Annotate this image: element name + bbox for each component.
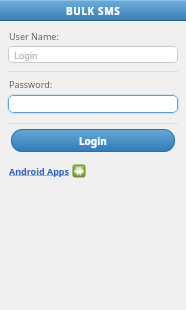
staticText: Login [79,134,107,148]
button[interactable] [8,95,178,113]
other: Android Apps [73,165,85,177]
staticText: BULK SMS [66,4,121,18]
staticText: Login [14,49,38,61]
button[interactable]: Login [8,46,178,63]
staticText: Android Apps [9,165,70,177]
staticText: Password: [9,78,53,90]
button[interactable]: Android Apps [9,165,85,177]
staticText: User Name: [9,30,59,42]
button[interactable]: Login [11,129,175,152]
